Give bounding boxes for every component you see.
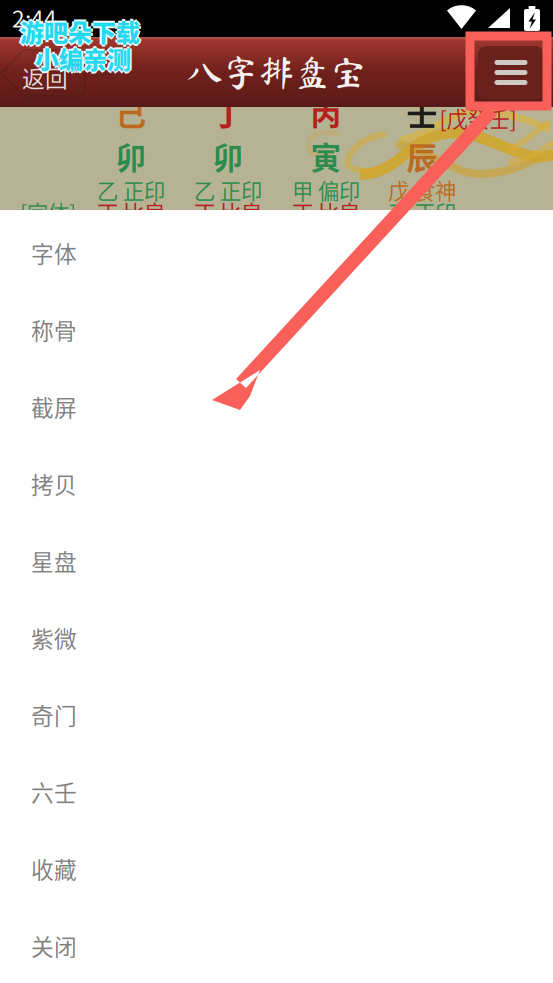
button[interactable]: 六壬 xyxy=(0,749,553,826)
staticText: 辰 xyxy=(406,134,437,178)
button[interactable]: 紫微 xyxy=(0,595,553,672)
staticText: 收藏 xyxy=(31,852,77,885)
staticText: 丁 比肩 xyxy=(292,197,360,227)
staticText: 拷贝 xyxy=(31,467,77,500)
staticText: 称骨 xyxy=(31,313,77,346)
staticText: 关闭 xyxy=(31,929,77,962)
staticText: 游吧朵下载 xyxy=(20,12,140,47)
staticText: 寅 xyxy=(310,134,341,178)
staticText: 小编亲测 xyxy=(35,41,131,76)
staticText: 卯 xyxy=(212,134,243,178)
staticText: 壬 xyxy=(406,90,437,134)
button[interactable]: 关闭 xyxy=(0,903,553,980)
staticText: 丁 xyxy=(212,90,243,134)
staticText: 小编亲测 xyxy=(35,43,131,78)
staticText: 卯 xyxy=(115,134,146,178)
staticText: 丁 比肩 xyxy=(194,197,262,227)
button[interactable]: 拷贝 xyxy=(0,441,553,518)
staticText: 游吧朵下载 xyxy=(20,14,140,49)
button[interactable]: 称骨 xyxy=(0,287,553,364)
staticText: 八字排盘宝 xyxy=(186,54,366,90)
staticText: 六壬 xyxy=(31,775,77,808)
button[interactable]: 截屏 xyxy=(0,364,553,441)
button[interactable]: 字体 xyxy=(0,210,553,287)
staticText: 游吧朵下载 xyxy=(22,14,142,49)
staticText: 小编亲测 xyxy=(37,41,133,76)
staticText: 己 xyxy=(115,90,146,134)
staticText: 丁 比肩 xyxy=(97,197,165,227)
button[interactable]: 返回 xyxy=(0,37,90,107)
staticText: 2:44 xyxy=(12,1,57,34)
button[interactable]: 奇门 xyxy=(0,672,553,749)
staticText: [字体] xyxy=(20,197,76,227)
staticText: 返回 xyxy=(22,61,68,94)
staticText: 小编亲测 xyxy=(35,39,131,74)
button[interactable]: 星盘 xyxy=(0,518,553,595)
staticText: 戊 食神 xyxy=(388,175,456,205)
button[interactable]: 收藏 xyxy=(0,826,553,903)
staticText: 乙 正印 xyxy=(194,175,262,205)
staticText: 字体 xyxy=(31,236,77,269)
staticText: 游吧朵下载 xyxy=(20,16,140,51)
staticText: 星盘 xyxy=(31,544,77,577)
staticText: 丙 xyxy=(310,90,341,134)
staticText: 乙 正印 xyxy=(388,197,456,227)
button[interactable]: Menu xyxy=(478,46,544,99)
staticText: 游吧朵下载 xyxy=(18,14,138,49)
staticText: 甲 偏印 xyxy=(292,175,360,205)
staticText: [戊癸壬] xyxy=(439,103,516,133)
staticText: 紫微 xyxy=(31,621,77,654)
staticText: 截屏 xyxy=(31,390,77,423)
staticText: 小编亲测 xyxy=(33,41,129,76)
staticText: 奇门 xyxy=(31,698,77,731)
staticText: 乙 正印 xyxy=(97,175,165,205)
